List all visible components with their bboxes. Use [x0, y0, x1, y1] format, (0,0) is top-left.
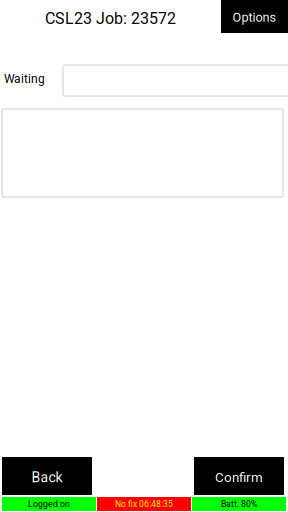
staticText: Options [232, 10, 276, 25]
button[interactable]: Options [221, 0, 288, 33]
button[interactable]: Waiting [63, 65, 288, 96]
button[interactable]: Notes [2, 109, 283, 197]
staticText: Confirm [215, 470, 263, 485]
staticText: Back [31, 469, 62, 486]
staticText: CSL23 Job: 23572 [45, 9, 176, 28]
staticText: Waiting [4, 72, 45, 86]
staticText: No fix 06:48:35 [115, 499, 173, 509]
staticText: Batt. 80% [221, 499, 257, 509]
button[interactable]: Back [2, 457, 92, 495]
button[interactable]: Confirm [194, 457, 284, 495]
staticText: Logged on [28, 499, 70, 509]
